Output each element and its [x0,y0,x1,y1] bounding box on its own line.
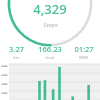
staticText: 時間 [79,55,88,59]
button[interactable]: Activity chart [0,62,100,100]
staticText: kcal [46,55,54,59]
button[interactable]: 01:27 [67,44,100,59]
button[interactable]: 3.27 [0,44,33,59]
staticText: Steps [43,21,58,28]
staticText: km [13,55,20,59]
staticText: 4,329 [33,0,67,18]
staticText: 3.27 [9,44,24,54]
button[interactable]: 166.23 [33,44,67,59]
staticText: 166.23 [38,44,62,54]
staticText: 01:27 [74,44,94,54]
button[interactable]: Steps progress ring [0,0,100,42]
